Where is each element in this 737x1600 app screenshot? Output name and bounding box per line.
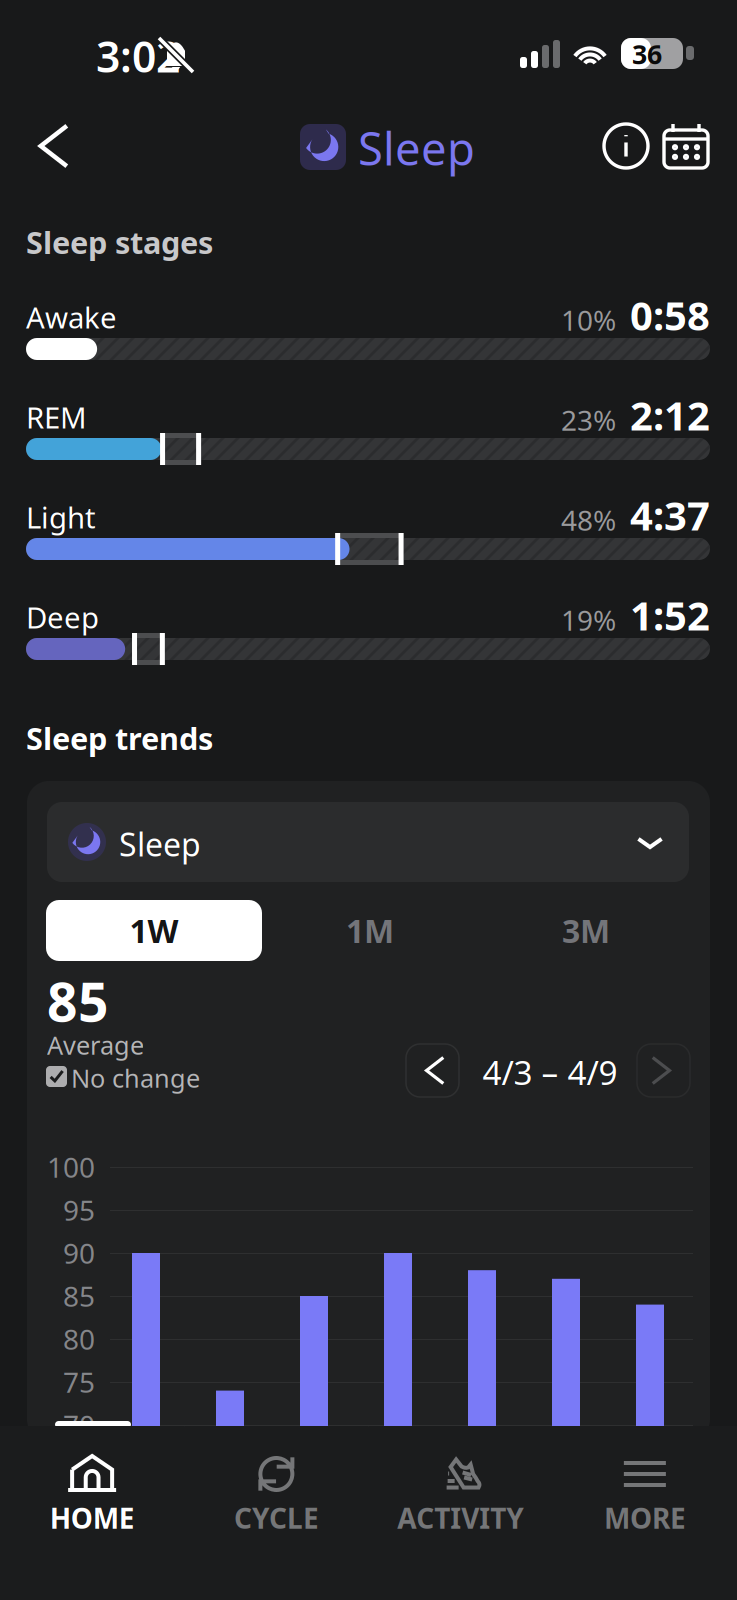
- button[interactable]: Back: [22, 118, 78, 174]
- staticText: Average: [47, 1028, 144, 1062]
- staticText: MORE: [604, 1499, 686, 1537]
- staticText: 0:58: [630, 288, 710, 341]
- staticText: [616, 604, 630, 642]
- button[interactable]: MORE: [553, 1426, 737, 1600]
- staticText: 80: [63, 1320, 95, 1358]
- staticText: Light: [26, 497, 96, 536]
- staticText: Awake: [26, 297, 117, 336]
- staticText: 3:02: [96, 28, 180, 84]
- staticText: 100: [47, 1148, 95, 1186]
- staticText: Deep: [26, 597, 99, 636]
- button[interactable]: CYCLE: [184, 1426, 368, 1600]
- staticText: 48%: [561, 501, 616, 539]
- staticText: Sleep trends: [26, 718, 213, 758]
- staticText: 1W: [129, 909, 178, 952]
- staticText: CYCLE: [234, 1499, 319, 1537]
- button[interactable]: 3M: [562, 909, 610, 952]
- staticText: 3M: [562, 909, 610, 952]
- staticText: [616, 304, 630, 342]
- button[interactable]: Next week: [637, 1044, 690, 1097]
- staticText: 85: [63, 1277, 95, 1315]
- staticText: Sleep: [358, 118, 475, 178]
- button[interactable]: HOME: [0, 1426, 184, 1600]
- button[interactable]: Info: [604, 124, 648, 168]
- staticText: 70: [63, 1406, 95, 1444]
- staticText: 85: [47, 966, 109, 1036]
- button[interactable]: 1W: [46, 900, 262, 961]
- staticText: No change: [71, 1061, 200, 1095]
- staticText: ACTIVITY: [397, 1499, 524, 1537]
- button[interactable]: 1M: [346, 909, 394, 952]
- staticText: HOME: [50, 1499, 135, 1537]
- staticText: [616, 404, 630, 442]
- staticText: 1:52: [630, 588, 710, 641]
- staticText: Sleep: [119, 823, 201, 865]
- button[interactable]: Calendar: [664, 124, 708, 168]
- staticText: 1M: [346, 909, 394, 952]
- staticText: Sleep stages: [26, 222, 213, 262]
- staticText: [616, 504, 630, 542]
- button[interactable]: Sleep: [47, 802, 689, 882]
- staticText: 4:37: [630, 488, 710, 541]
- staticText: 75: [63, 1363, 95, 1401]
- staticText: 19%: [561, 601, 616, 639]
- staticText: 90: [63, 1234, 95, 1272]
- button[interactable]: ACTIVITY: [368, 1426, 553, 1600]
- button[interactable]: Previous week: [406, 1044, 459, 1097]
- staticText: 4/3 – 4/9: [482, 1050, 617, 1094]
- staticText: 10%: [561, 301, 616, 339]
- staticText: REM: [26, 397, 87, 436]
- staticText: 36: [632, 36, 662, 72]
- staticText: 2:12: [630, 388, 710, 441]
- staticText: 95: [63, 1191, 95, 1229]
- staticText: 23%: [561, 401, 616, 439]
